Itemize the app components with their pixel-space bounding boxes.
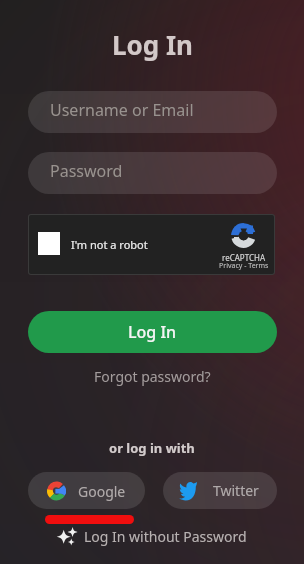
staticText: Username or Email (50, 99, 194, 121)
staticText: or log in with (109, 439, 195, 457)
button[interactable]: Forgot password? (88, 362, 217, 391)
staticText: I'm not a robot (71, 237, 148, 252)
staticText: Log In without Password (84, 527, 247, 546)
staticText: Forgot password? (94, 367, 211, 386)
button[interactable]: Twitter (163, 472, 277, 509)
staticText: Twitter (213, 481, 259, 500)
staticText: reCAPTCHA (222, 252, 266, 263)
button[interactable]: Password (28, 152, 277, 194)
staticText: Log In (128, 321, 177, 343)
staticText: Password (50, 160, 123, 182)
button[interactable]: Log In (28, 311, 277, 353)
button[interactable]: Log In without Password (56, 525, 247, 547)
staticText: Google (78, 482, 126, 501)
button[interactable]: Username or Email (28, 91, 277, 133)
staticText: Privacy - Terms (219, 261, 269, 271)
staticText: Log In (112, 27, 193, 62)
button[interactable]: Google (28, 472, 145, 509)
